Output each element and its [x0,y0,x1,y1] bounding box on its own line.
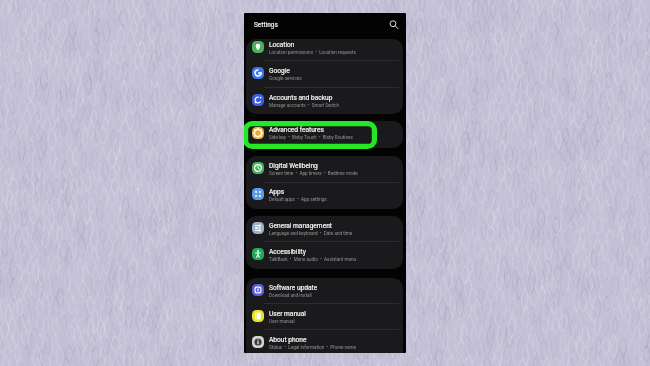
staticText: Manage accounts • Smart Switch [269,103,339,108]
staticText: Apps [269,188,285,196]
staticText: About phone [269,336,307,344]
staticText: Location permissions • Location requests [269,50,356,55]
button[interactable]: Search [387,18,400,31]
button[interactable] [246,181,403,207]
staticText: Screen time • App timers • Bedtime mode [269,171,358,176]
staticText: TalkBack • Mono audio • Assistant menu [269,257,356,262]
staticText: Side key • Bixby Touch • Bixby Routines [269,135,353,140]
staticText: User manual [269,310,306,318]
button[interactable] [246,87,403,113]
staticText: Advanced features [269,126,324,134]
button[interactable] [246,241,403,267]
button[interactable] [246,121,403,146]
button[interactable] [246,278,403,304]
staticText: Default apps • App settings [269,197,327,202]
staticText: Language and keyboard • Date and time [269,231,353,236]
button[interactable] [246,156,403,182]
staticText: User manual [269,319,295,324]
staticText: General management [269,222,332,230]
staticText: Status • Legal information • Phone name [269,345,356,350]
button[interactable] [246,39,403,60]
staticText: Google services [269,76,302,81]
staticText: Download and install [269,293,312,298]
button[interactable] [246,60,403,86]
staticText: Accessibility [269,248,306,256]
button[interactable] [246,303,403,329]
staticText: Settings [254,21,278,29]
button[interactable] [246,329,403,353]
staticText: Location [269,41,295,49]
staticText: Google [269,67,290,75]
staticText: Digital Wellbeing [269,162,318,170]
staticText: Software update [269,284,318,292]
staticText: Accounts and backup [269,94,333,102]
button[interactable] [246,216,403,241]
